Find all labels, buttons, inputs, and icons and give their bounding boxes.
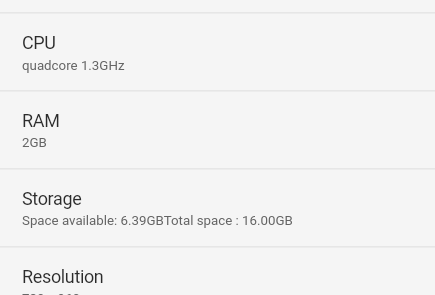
button[interactable]: Storage [0,170,435,246]
staticText: Resolution [22,266,104,287]
staticText: Storage [22,188,82,209]
staticText: CPU [22,32,56,53]
button[interactable]: CPU [0,14,435,90]
staticText: 720 x 960 [22,291,81,295]
button[interactable]: Resolution [0,248,435,295]
staticText: Space available: 6.39GBTotal space : 16.… [22,213,293,229]
staticText: RAM [22,110,60,131]
staticText: quadcore 1.3GHz [22,58,125,74]
staticText: 2GB [22,135,47,151]
button[interactable]: RAM [0,92,435,168]
